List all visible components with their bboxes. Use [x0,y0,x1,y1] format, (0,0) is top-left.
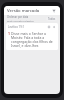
staticText: Levítico 19:1 [8,25,25,29]
staticText: Versão marcada [7,8,40,14]
staticText: Ordenar por data [7,15,29,19]
button[interactable]: Todos [46,17,57,21]
button[interactable]: Levítico 19:1 [6,23,58,50]
button[interactable]: Bookmark [47,25,51,29]
staticText: mais recente primeiro [7,20,34,22]
staticText: Disse mais o Senhor a Moisés: Fala a tod… [11,31,56,48]
staticText: Todos [48,17,56,21]
staticText: 1 [8,31,11,36]
button[interactable]: Filter [51,8,57,14]
button[interactable]: Share [52,25,56,29]
